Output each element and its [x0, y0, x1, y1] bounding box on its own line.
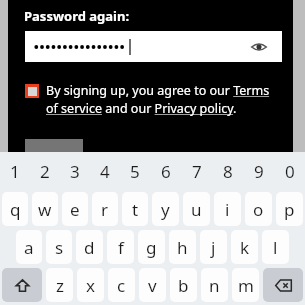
button[interactable]: e — [62, 192, 88, 226]
staticText: 5 — [130, 160, 140, 183]
button[interactable]: 0 — [274, 152, 305, 190]
button[interactable]: z — [46, 268, 73, 302]
button[interactable]: y — [152, 192, 179, 226]
button[interactable]: 3 — [60, 152, 90, 190]
other: Accept terms checkbox — [25, 84, 39, 98]
button[interactable]: l — [262, 230, 289, 264]
staticText: l — [273, 236, 278, 259]
button[interactable]: i — [214, 192, 241, 226]
staticText: f — [118, 236, 124, 259]
staticText: i — [225, 198, 230, 221]
button[interactable]: 1 — [0, 152, 30, 190]
button[interactable]: w — [32, 192, 58, 226]
staticText: 1 — [10, 160, 20, 183]
button[interactable]: k — [231, 230, 258, 264]
button[interactable]: x — [77, 268, 104, 302]
staticText: 0 — [285, 160, 295, 183]
staticText: s — [55, 236, 64, 259]
button[interactable]: 2 — [30, 152, 60, 190]
button[interactable]: b — [170, 268, 197, 302]
button[interactable]: Shift — [2, 268, 42, 302]
staticText: g — [146, 236, 157, 259]
staticText: e — [70, 198, 80, 221]
staticText: z — [56, 274, 64, 297]
button[interactable]: 8 — [212, 152, 243, 190]
button[interactable]: p — [276, 192, 303, 226]
staticText: 9 — [254, 160, 264, 183]
staticText: p — [284, 198, 295, 221]
staticText: 7 — [192, 160, 202, 183]
staticText: a — [24, 236, 34, 259]
staticText: 8 — [223, 160, 233, 183]
staticText: r — [101, 198, 109, 221]
button[interactable]: Accept terms checkbox — [25, 82, 283, 117]
button[interactable]: 4 — [90, 152, 120, 190]
button[interactable]: d — [76, 230, 103, 264]
button[interactable]: o — [245, 192, 272, 226]
staticText: u — [191, 198, 202, 221]
staticText: h — [177, 236, 188, 259]
button[interactable]: g — [138, 230, 165, 264]
button[interactable]: h — [169, 230, 196, 264]
button[interactable]: 5 — [120, 152, 150, 190]
staticText: 4 — [100, 160, 110, 183]
button[interactable]: j — [200, 230, 227, 264]
staticText: j — [211, 236, 216, 259]
staticText: n — [209, 274, 220, 297]
button[interactable]: 9 — [243, 152, 274, 190]
button[interactable]: q — [2, 192, 28, 226]
staticText: 2 — [40, 160, 50, 183]
staticText: o — [253, 198, 264, 221]
button[interactable]: Backspace — [263, 268, 303, 302]
staticText: m — [238, 274, 254, 297]
button[interactable]: 6 — [150, 152, 181, 190]
button[interactable]: n — [201, 268, 228, 302]
button[interactable]: s — [46, 230, 72, 264]
button[interactable]: Show password — [248, 36, 270, 58]
staticText: y — [161, 198, 170, 221]
staticText: x — [86, 274, 95, 297]
staticText: d — [84, 236, 95, 259]
staticText: b — [178, 274, 189, 297]
button[interactable]: u — [183, 192, 210, 226]
button[interactable]: 7 — [181, 152, 212, 190]
button[interactable]: Show password — [25, 31, 282, 62]
staticText: By signing up, you agree to our Terms of… — [46, 82, 283, 117]
button[interactable]: r — [92, 192, 118, 226]
staticText: q — [10, 198, 21, 221]
staticText: 6 — [161, 160, 171, 183]
staticText: Password again: — [24, 7, 130, 25]
staticText: k — [240, 236, 250, 259]
button[interactable]: t — [122, 192, 148, 226]
staticText: w — [38, 198, 52, 221]
button[interactable]: m — [232, 268, 259, 302]
staticText: c — [117, 274, 126, 297]
staticText: t — [132, 198, 139, 221]
button[interactable]: c — [108, 268, 135, 302]
button[interactable] — [25, 139, 83, 159]
button[interactable]: f — [107, 230, 134, 264]
staticText: v — [148, 274, 157, 297]
button[interactable]: v — [139, 268, 166, 302]
staticText: 3 — [70, 160, 80, 183]
button[interactable]: a — [16, 230, 42, 264]
